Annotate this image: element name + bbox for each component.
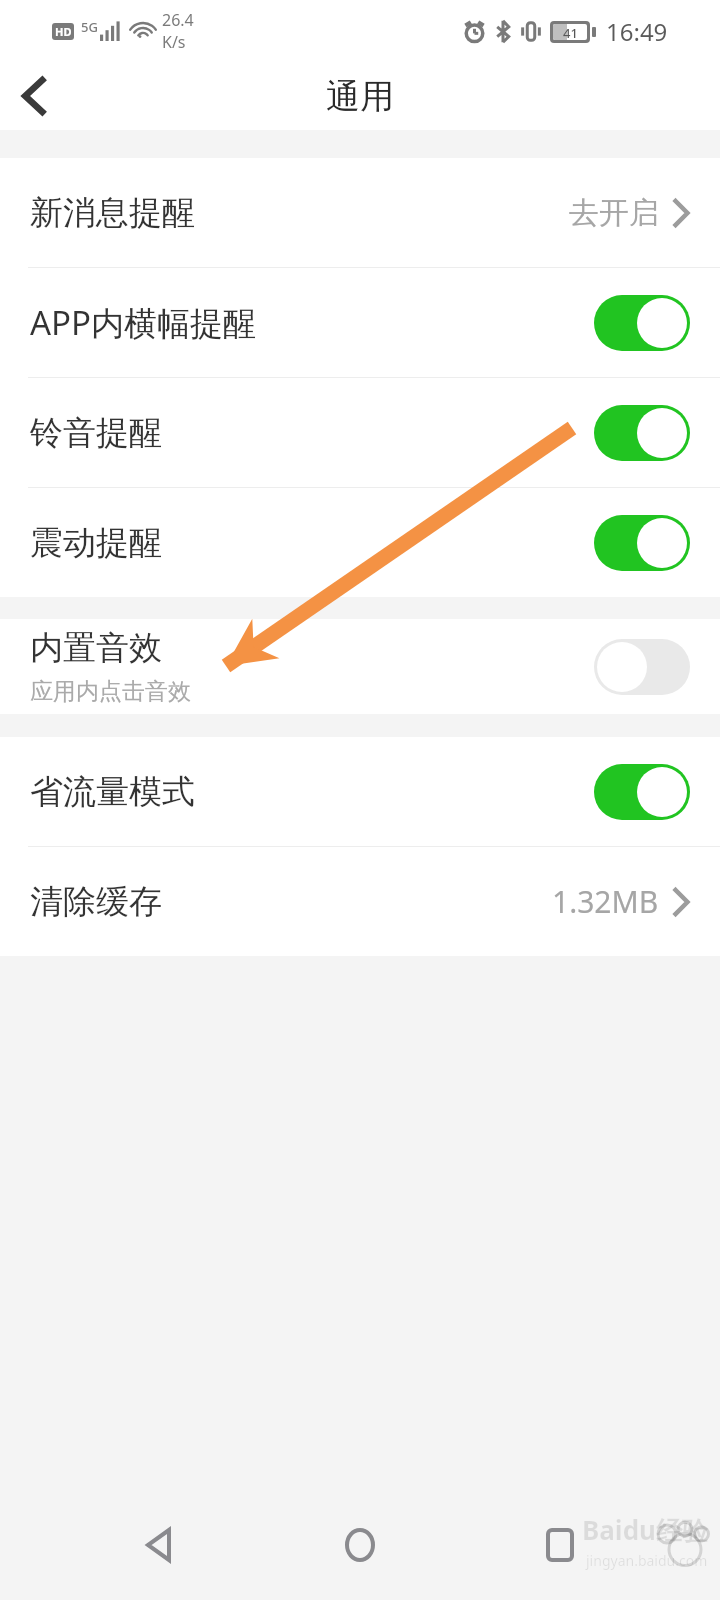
button[interactable]: 震动提醒 — [0, 488, 720, 597]
staticText: 铃音提醒 — [30, 412, 162, 454]
button[interactable]: 省流量模式 — [0, 737, 720, 846]
button[interactable]: Switch on — [594, 405, 690, 461]
staticText: 新消息提醒 — [30, 192, 195, 234]
button[interactable]: Switch on — [594, 295, 690, 351]
staticText: 清除缓存 — [30, 881, 162, 923]
button[interactable]: 铃音提醒 — [0, 378, 720, 487]
staticText: 通用 — [326, 75, 394, 118]
staticText: 26.4 — [162, 9, 194, 31]
staticText: 16:49 — [606, 15, 668, 48]
button[interactable]: Back — [120, 1505, 200, 1585]
button[interactable]: 内置音效 — [0, 619, 720, 714]
button[interactable]: APP内横幅提醒 — [0, 268, 720, 377]
button[interactable]: 新消息提醒 — [0, 158, 720, 267]
staticText: K/s — [162, 31, 186, 53]
button[interactable]: Switch off — [594, 639, 690, 695]
button[interactable]: Recents — [520, 1505, 600, 1585]
staticText: 去开启 — [569, 194, 659, 232]
staticText: 省流量模式 — [30, 771, 195, 813]
staticText: APP内横幅提醒 — [30, 300, 257, 345]
staticText: 内置音效 — [30, 627, 162, 669]
staticText: HD — [55, 24, 72, 39]
staticText: 应用内点击音效 — [30, 677, 191, 706]
staticText: 震动提醒 — [30, 522, 162, 564]
button[interactable]: Home — [320, 1505, 400, 1585]
staticText: Baidu经验 — [582, 1512, 708, 1548]
staticText: 1.32MB — [552, 881, 659, 922]
button[interactable]: Switch on — [594, 515, 690, 571]
staticText: jingyan.baidu.com — [586, 1551, 708, 1570]
staticText: 5G — [81, 18, 98, 36]
button[interactable]: 清除缓存 — [0, 847, 720, 956]
staticText: 41 — [563, 24, 578, 40]
button[interactable]: Back — [0, 62, 68, 130]
button[interactable]: Switch on — [594, 764, 690, 820]
